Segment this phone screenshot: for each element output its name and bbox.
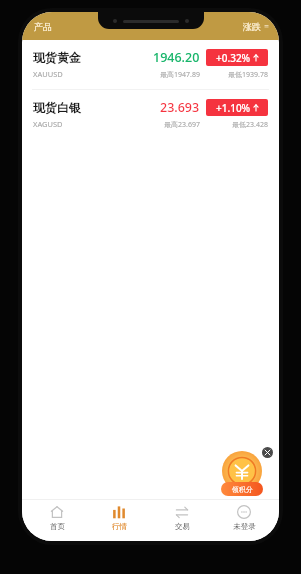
button[interactable]: 关闭 — [262, 447, 273, 458]
staticText: 未登录 — [233, 522, 256, 531]
staticText: 23.693 — [160, 99, 200, 116]
button[interactable]: 领积分 — [221, 482, 263, 496]
staticText: 最高23.697 — [164, 120, 200, 130]
button[interactable]: 产品 — [34, 21, 52, 32]
staticText: 首页 — [50, 522, 65, 531]
button[interactable]: 行情 — [91, 499, 147, 541]
button[interactable]: 现货黄金 — [22, 40, 279, 89]
button[interactable]: 现货白银 — [22, 90, 279, 139]
staticText: 现货白银 — [33, 100, 81, 115]
staticText: XAUUSD — [33, 69, 63, 79]
button[interactable]: 未登录 — [216, 499, 272, 541]
staticText: 领积分 — [232, 485, 253, 494]
staticText: XAGUSD — [33, 119, 63, 129]
staticText: 最高1947.89 — [160, 70, 200, 80]
staticText: 交易 — [175, 522, 190, 531]
staticText: +1.10% — [216, 101, 251, 115]
staticText: 最低1939.78 — [228, 70, 268, 80]
button[interactable]: 首页 — [29, 499, 85, 541]
staticText: 1946.20 — [153, 49, 200, 66]
button[interactable]: 交易 — [154, 499, 210, 541]
staticText: 最低23.428 — [232, 120, 268, 130]
staticText: 涨跌 — [243, 21, 261, 32]
button[interactable]: 涨跌 — [243, 21, 269, 32]
staticText: 行情 — [112, 522, 127, 531]
staticText: +0.32% — [216, 51, 251, 65]
staticText: 现货黄金 — [33, 50, 81, 65]
button[interactable]: 领积分 — [222, 451, 262, 491]
